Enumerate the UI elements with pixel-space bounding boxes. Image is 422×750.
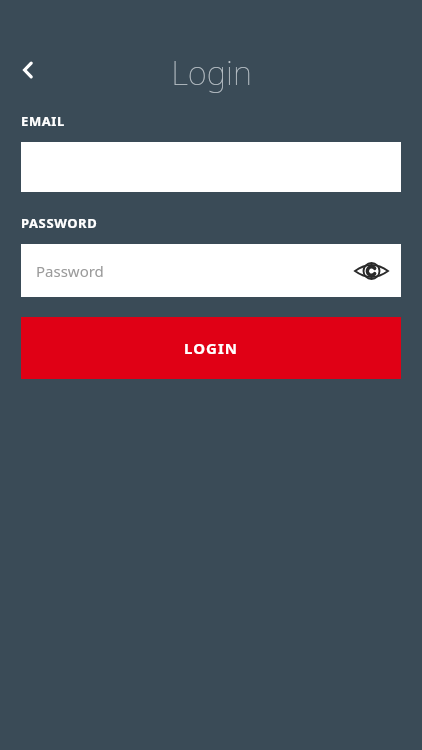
staticText: LOGIN [184, 338, 238, 358]
button[interactable]: Show password [349, 249, 393, 293]
button[interactable]: Back [8, 50, 48, 90]
button[interactable]: LOGIN [21, 317, 401, 379]
staticText: EMAIL [21, 112, 65, 130]
staticText: PASSWORD [21, 214, 98, 232]
staticText: Password [36, 261, 104, 281]
button[interactable]: Password [21, 244, 401, 297]
staticText: Login [171, 50, 252, 95]
